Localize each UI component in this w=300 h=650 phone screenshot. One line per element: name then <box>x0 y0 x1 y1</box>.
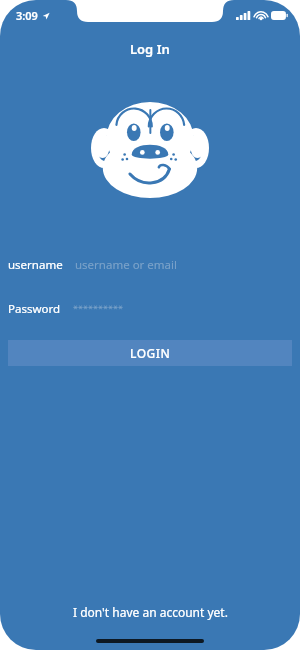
staticText: 3:09 <box>16 8 38 23</box>
button[interactable]: LOGIN <box>8 340 292 366</box>
staticText: LOGIN <box>130 345 171 361</box>
staticText: I don't have an account yet. <box>73 604 228 620</box>
staticText: Password <box>8 301 61 317</box>
button[interactable]: Password <box>0 298 300 320</box>
staticText: Log In <box>130 40 170 58</box>
button[interactable]: username <box>0 254 300 276</box>
staticText: username <box>8 257 63 273</box>
button[interactable]: I don't have an account yet. <box>0 599 300 625</box>
other: Monkey logo <box>91 100 209 200</box>
staticText: username or email <box>75 257 177 273</box>
